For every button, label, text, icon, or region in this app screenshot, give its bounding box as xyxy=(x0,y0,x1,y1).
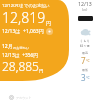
staticText: 円 xyxy=(39,68,44,73)
staticText: °C xyxy=(86,75,90,80)
staticText: 最高 xyxy=(82,51,88,55)
staticText: 12/13は +1,063円 xyxy=(2,28,44,35)
staticText: °C xyxy=(86,58,90,63)
staticText: 12/13 xyxy=(78,0,92,7)
staticText: 28,885 xyxy=(2,58,39,74)
staticText: くもり xyxy=(80,39,90,43)
staticText: 7 xyxy=(81,55,86,66)
staticText: 12/13は +356円 xyxy=(2,52,38,59)
staticText: 時々雪 xyxy=(80,44,90,48)
staticText: 3 xyxy=(81,72,86,83)
staticText: 12月 xyxy=(2,43,13,50)
staticText: (月) xyxy=(82,8,88,12)
staticText: 12,819 xyxy=(2,8,46,27)
staticText: 円 xyxy=(46,20,52,26)
staticText: アカウント xyxy=(16,96,32,100)
staticText: のお支払い xyxy=(13,46,30,50)
staticText: 12/12(月)までのお支払い xyxy=(2,3,50,9)
button[interactable]: Account settings xyxy=(9,95,32,100)
staticText: 最低 xyxy=(82,68,88,72)
